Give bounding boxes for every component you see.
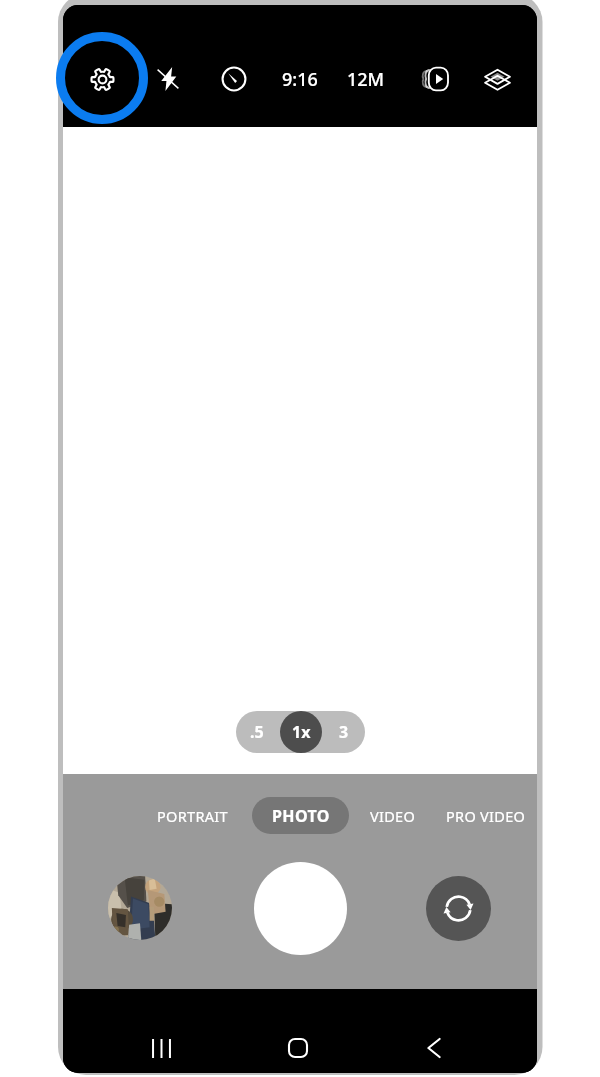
button[interactable]: 1x bbox=[279, 711, 322, 753]
button[interactable]: 9:16 bbox=[272, 57, 328, 101]
button[interactable]: Shutter bbox=[254, 862, 347, 955]
staticText: VIDEO bbox=[370, 806, 416, 826]
staticText: PORTRAIT bbox=[157, 806, 228, 826]
button[interactable]: Gallery bbox=[108, 876, 172, 940]
staticText: 9:16 bbox=[282, 67, 318, 92]
button[interactable]: .5 bbox=[236, 711, 278, 753]
staticText: PRO VIDEO bbox=[446, 806, 526, 826]
button[interactable]: Recents bbox=[139, 1026, 183, 1070]
button[interactable]: Timer bbox=[210, 55, 258, 103]
button[interactable]: Settings bbox=[78, 55, 126, 103]
button[interactable]: PRO VIDEO bbox=[436, 797, 535, 834]
staticText: 3 bbox=[339, 721, 349, 743]
staticText: 12M bbox=[347, 67, 385, 92]
button[interactable]: Home bbox=[276, 1026, 320, 1070]
staticText: PHOTO bbox=[272, 805, 330, 827]
button[interactable]: Motion photo bbox=[412, 55, 460, 103]
button[interactable]: Back bbox=[412, 1026, 456, 1070]
button[interactable]: Filters bbox=[473, 55, 521, 103]
button[interactable]: PHOTO bbox=[252, 797, 349, 834]
button[interactable]: VIDEO bbox=[362, 797, 424, 834]
button[interactable]: 12M bbox=[338, 57, 394, 101]
staticText: 1x bbox=[292, 721, 311, 743]
button[interactable]: 3 bbox=[323, 711, 365, 753]
button[interactable]: Flash off bbox=[144, 55, 192, 103]
staticText: .5 bbox=[250, 721, 264, 743]
button[interactable]: Switch camera bbox=[426, 876, 491, 941]
button[interactable]: PORTRAIT bbox=[147, 797, 237, 834]
